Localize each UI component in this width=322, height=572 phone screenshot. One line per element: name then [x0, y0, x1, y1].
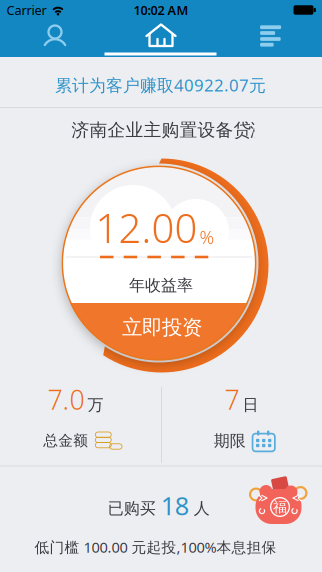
button[interactable]: 12.00 [61, 165, 256, 360]
button[interactable]: 累计为客户赚取40922.07元 [0, 60, 321, 109]
staticText: 济南企业主购置设备贷 [71, 119, 251, 141]
staticText: 低门槛 100.00 元起投,100%本息担保 [34, 537, 276, 557]
staticText: 立即投资 [122, 315, 202, 340]
staticText: 期限 [214, 431, 246, 451]
button[interactable] [25, 20, 85, 57]
staticText: 7 [224, 382, 239, 417]
staticText: 累计为客户赚取40922.07元 [55, 74, 266, 96]
staticText: 福 [273, 498, 287, 516]
staticText: 万 [87, 395, 103, 415]
button[interactable] [131, 20, 191, 57]
staticText: 总金额 [43, 431, 88, 449]
button[interactable]: 福 [241, 473, 313, 529]
button[interactable] [238, 20, 298, 57]
staticText: % [199, 225, 214, 249]
staticText: 已购买 [108, 499, 161, 518]
staticText: 18 [161, 489, 189, 522]
staticText: 7.0 [47, 382, 84, 417]
staticText: 人 [189, 499, 210, 518]
staticText: 日 [242, 395, 258, 415]
staticText: 年收益率 [129, 276, 193, 295]
staticText: 12.00 [95, 201, 197, 254]
staticText: 济 [250, 119, 268, 141]
staticText: 10:02 AM [133, 2, 188, 18]
staticText: Carrier [6, 2, 46, 18]
